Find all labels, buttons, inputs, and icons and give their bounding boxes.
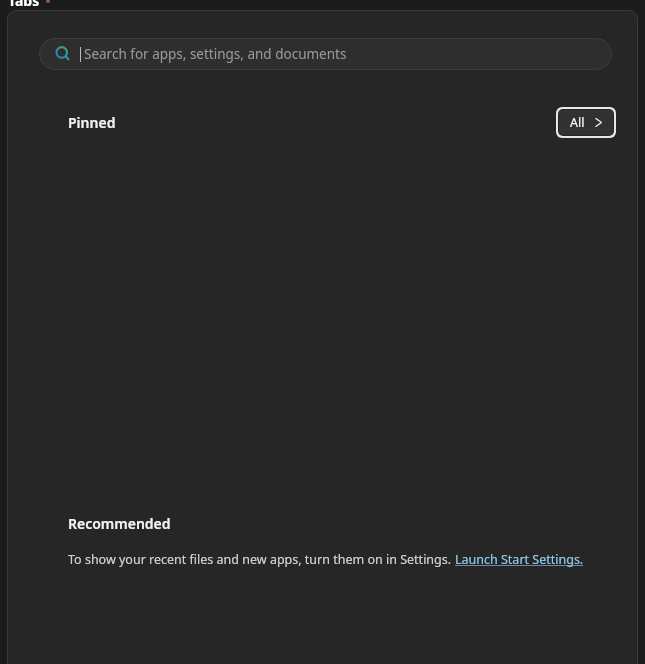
staticText: All xyxy=(570,114,585,131)
staticText: Launch Start Settings. xyxy=(455,551,584,568)
staticText: Pinned xyxy=(68,113,116,132)
staticText: Recommended xyxy=(68,514,171,533)
staticText: Tabs xyxy=(8,0,40,10)
staticText: Search for apps, settings, and documents xyxy=(84,45,347,63)
button[interactable]: All xyxy=(559,110,613,135)
button[interactable]: Launch Start Settings. xyxy=(455,551,584,568)
button[interactable]: Search xyxy=(39,38,612,70)
staticText: To show your recent files and new apps, … xyxy=(68,551,455,568)
other: Search xyxy=(55,46,71,62)
button[interactable]: Pinned xyxy=(68,113,116,132)
button[interactable]: Tabs xyxy=(8,0,50,10)
button[interactable]: Recommended xyxy=(68,514,171,533)
